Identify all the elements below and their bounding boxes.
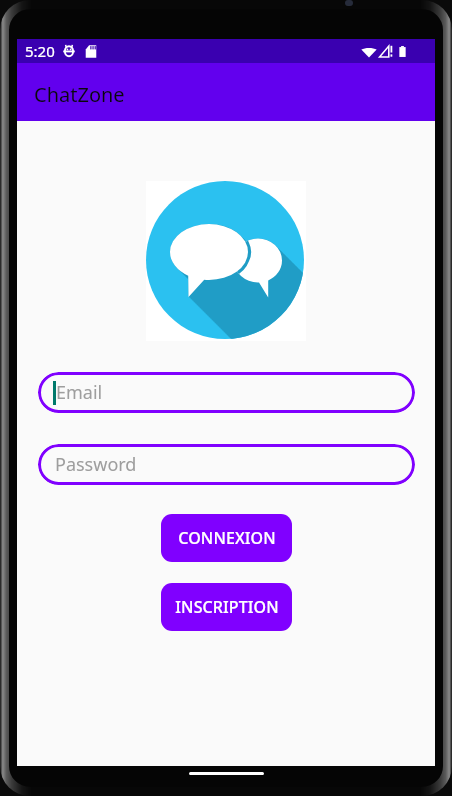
button[interactable]: Password — [38, 444, 415, 485]
staticText: CONNEXION — [178, 527, 276, 549]
staticText: 5:20 — [25, 41, 55, 61]
button[interactable]: INSCRIPTION — [161, 583, 292, 631]
staticText: ChatZone — [34, 81, 125, 108]
button[interactable]: Email — [38, 372, 415, 413]
staticText: Password — [55, 452, 137, 477]
staticText: INSCRIPTION — [175, 596, 279, 618]
button[interactable]: CONNEXION — [161, 514, 292, 562]
staticText: Email — [56, 380, 103, 405]
